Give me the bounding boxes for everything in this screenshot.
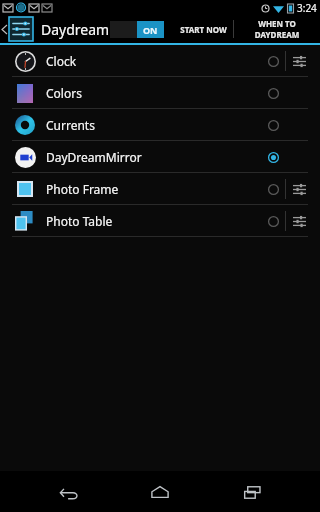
staticText: 3:24 (297, 1, 317, 15)
button[interactable]: Select Photo Table (261, 209, 285, 233)
staticText: DayDreamMirror (46, 149, 142, 165)
staticText: ON (143, 24, 158, 36)
staticText: Clock (46, 53, 77, 69)
button[interactable]: Photo Table settings (286, 208, 312, 234)
button[interactable]: Select Colors (261, 81, 285, 105)
button[interactable]: Photo Table (0, 205, 320, 236)
button[interactable]: Currents (0, 109, 320, 140)
staticText: WHEN TO DAYDREAM (240, 18, 314, 40)
button[interactable]: Select Clock (261, 49, 285, 73)
staticText: Colors (46, 85, 82, 101)
staticText: START NOW (180, 24, 227, 35)
staticText: Daydream (41, 20, 110, 39)
button[interactable]: Back (46, 475, 92, 509)
button[interactable]: Photo Frame (0, 173, 320, 204)
staticText: Currents (46, 117, 95, 133)
button[interactable]: Navigate up (0, 15, 9, 43)
button[interactable]: Photo Frame settings (286, 176, 312, 202)
button[interactable]: ON (110, 21, 164, 38)
button[interactable]: Recent apps (229, 475, 275, 509)
button[interactable]: Select Photo Frame (261, 177, 285, 201)
button[interactable]: Select Currents (261, 113, 285, 137)
staticText: Photo Frame (46, 181, 119, 197)
button[interactable]: Clock settings (286, 48, 312, 74)
staticText: Photo Table (46, 213, 113, 229)
button[interactable]: START NOW (174, 15, 233, 43)
button[interactable]: Home (137, 475, 183, 509)
button[interactable]: DayDreamMirror (0, 141, 320, 172)
button[interactable]: Clock (0, 45, 320, 76)
button[interactable]: Colors (0, 77, 320, 108)
button[interactable]: WHEN TO DAYDREAM (234, 15, 320, 43)
button[interactable]: Select DayDreamMirror (261, 145, 285, 169)
